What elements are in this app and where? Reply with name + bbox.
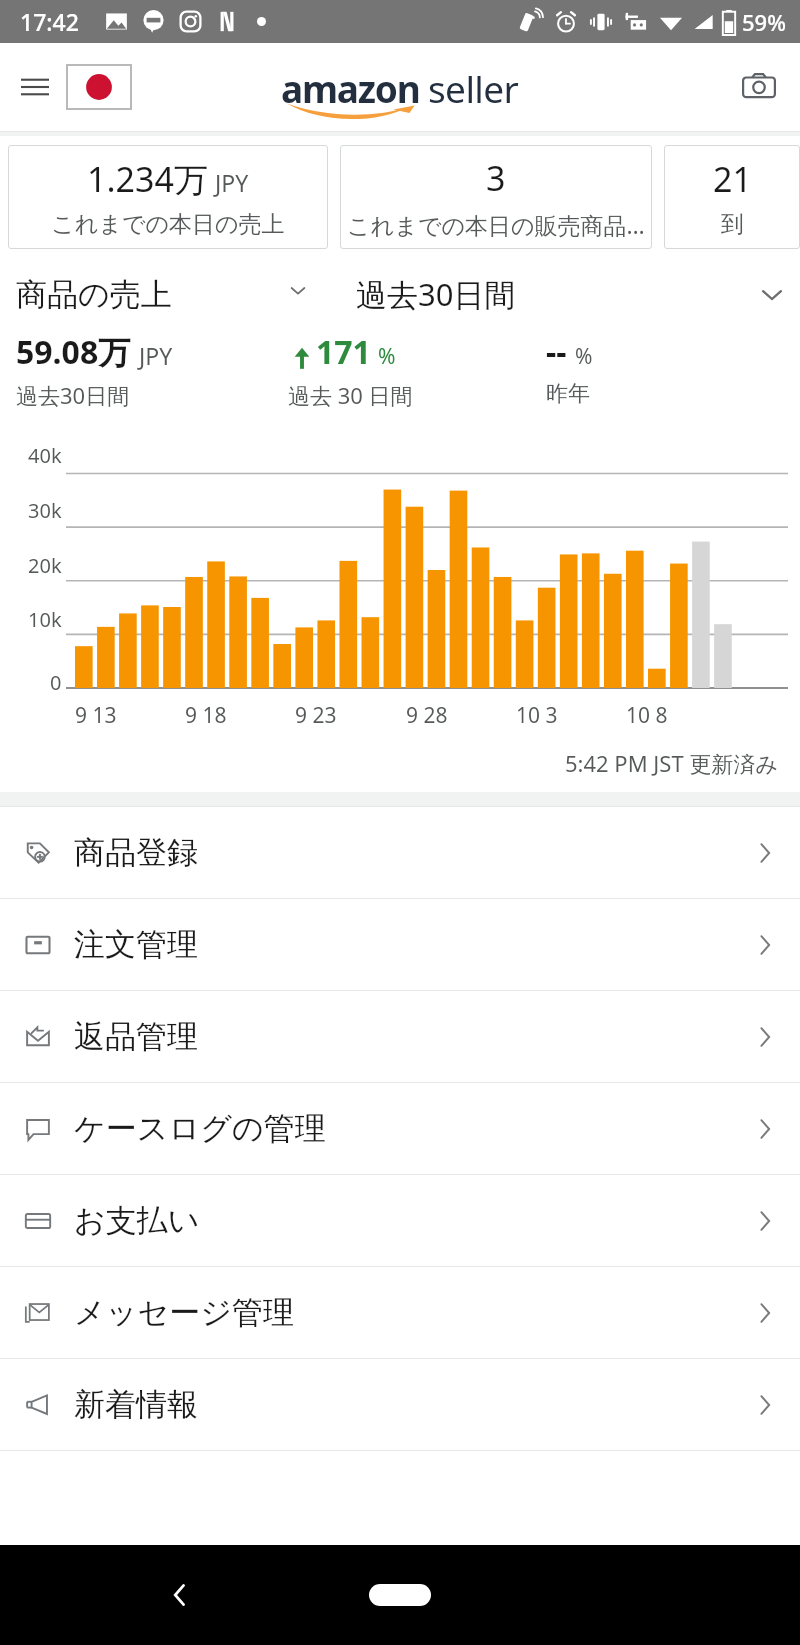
staticText: 5:42 PM JST 更新済み (565, 748, 778, 778)
staticText: 0 (50, 669, 62, 696)
staticText: 到 (721, 210, 744, 239)
button[interactable]: ケースログの管理 (0, 1083, 800, 1174)
staticText: 21 (713, 156, 752, 202)
staticText: 10 3 (516, 701, 558, 730)
staticText: amazon (281, 63, 420, 113)
staticText: 40k (28, 442, 62, 469)
button[interactable]: Marketplace Japan (66, 64, 132, 110)
staticText: 商品登録 (74, 833, 198, 872)
staticText: 9 18 (185, 701, 227, 730)
staticText: 171 (316, 330, 371, 374)
staticText: -- (546, 330, 567, 374)
staticText: 9 28 (406, 701, 448, 730)
button[interactable]: 新着情報 (0, 1359, 800, 1450)
staticText: 10k (28, 606, 62, 633)
staticText: 59% (742, 7, 786, 37)
button[interactable]: Home (369, 1584, 431, 1606)
staticText: % (378, 342, 396, 371)
staticText: 3 (486, 155, 506, 201)
button[interactable]: 1.234万 (8, 145, 328, 249)
staticText: 返品管理 (74, 1017, 198, 1056)
button[interactable]: 商品登録 (0, 807, 800, 898)
staticText: 20k (28, 552, 62, 579)
button[interactable]: 3 (340, 145, 652, 249)
staticText: 注文管理 (74, 925, 198, 964)
staticText: メッセージ管理 (74, 1293, 294, 1332)
staticText: 10 8 (626, 701, 668, 730)
button[interactable]: 21 (664, 145, 800, 249)
button[interactable]: 商品の売上 (16, 258, 316, 330)
staticText: JPY (139, 340, 173, 371)
staticText: 過去 30 日間 (288, 380, 413, 410)
button[interactable]: Scan barcode (734, 62, 784, 112)
staticText: % (575, 342, 593, 371)
staticText: お支払い (74, 1201, 200, 1240)
staticText: JPY (215, 167, 249, 198)
button[interactable]: 返品管理 (0, 991, 800, 1082)
staticText: 過去30日間 (16, 380, 130, 410)
staticText: これまでの本日の売上 (51, 210, 285, 239)
staticText: 9 13 (75, 701, 117, 730)
button[interactable]: 注文管理 (0, 899, 800, 990)
button[interactable]: 過去30日間 (356, 258, 786, 330)
staticText: 1.234万 (87, 156, 208, 202)
button[interactable]: Menu (12, 64, 58, 110)
staticText: 商品の売上 (16, 275, 172, 314)
button[interactable]: Back (150, 1565, 210, 1625)
button[interactable]: お支払い (0, 1175, 800, 1266)
staticText: seller (428, 63, 519, 113)
staticText: ケースログの管理 (74, 1109, 326, 1148)
staticText: 過去30日間 (356, 273, 516, 315)
staticText: 新着情報 (74, 1385, 198, 1424)
staticText: 昨年 (546, 380, 590, 408)
staticText: 30k (28, 497, 62, 524)
staticText: これまでの本日の販売商品… (347, 209, 645, 240)
staticText: 17:42 (20, 6, 79, 37)
staticText: 59.08万 (16, 330, 131, 374)
button[interactable]: メッセージ管理 (0, 1267, 800, 1358)
staticText: 9 23 (295, 701, 337, 730)
